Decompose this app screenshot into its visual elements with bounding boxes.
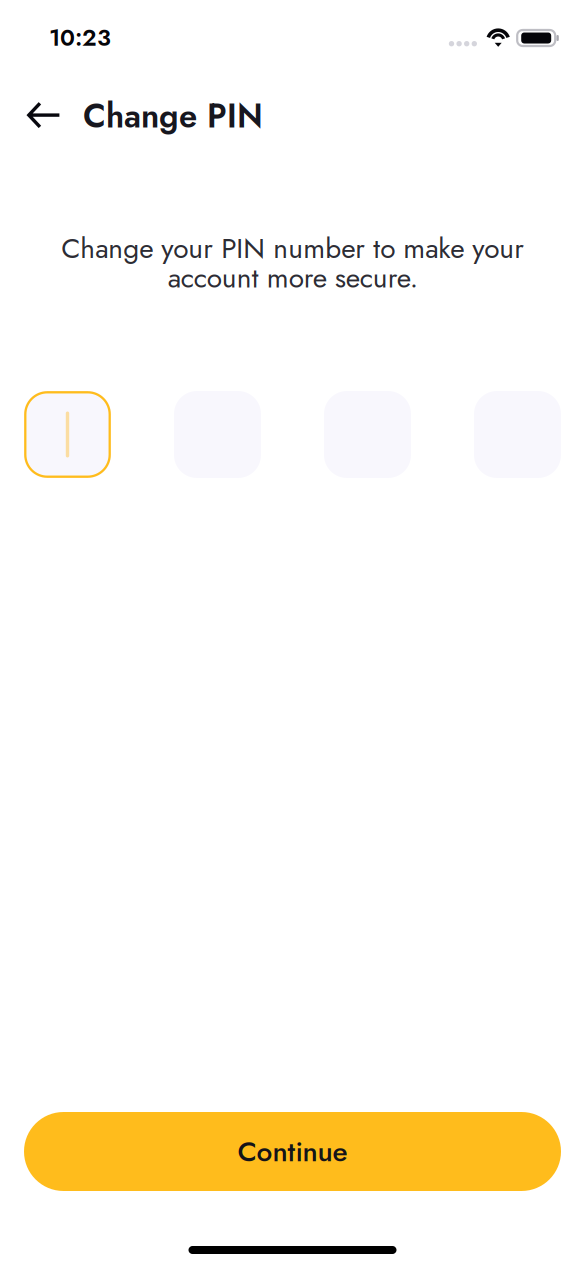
button[interactable]: PIN digit 1 xyxy=(24,391,111,478)
staticText: Continue xyxy=(237,1131,347,1172)
staticText: Change your PIN number to make your acco… xyxy=(61,228,524,298)
staticText: Change PIN xyxy=(83,92,263,140)
staticText: 10:23 xyxy=(49,21,111,54)
button[interactable]: Continue xyxy=(24,1112,561,1191)
button[interactable]: Back xyxy=(19,92,67,140)
